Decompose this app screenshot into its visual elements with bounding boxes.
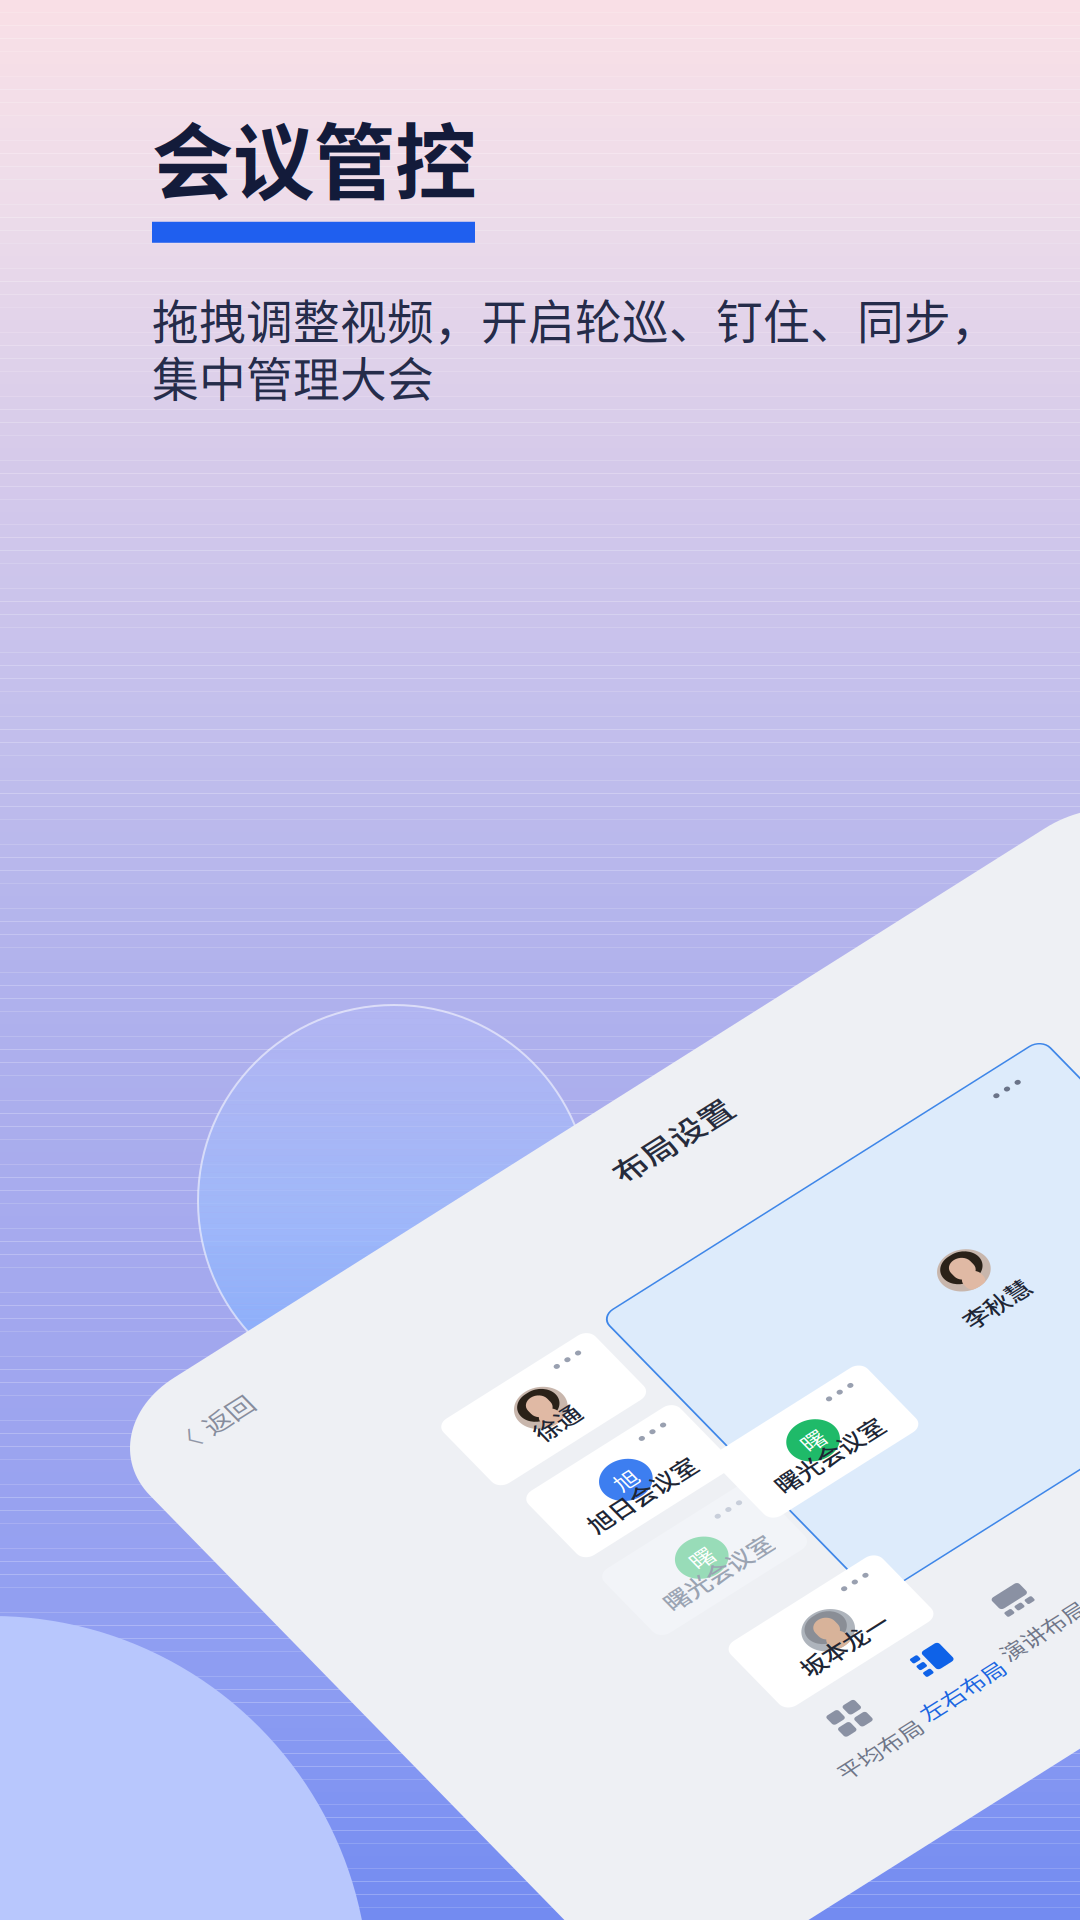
button[interactable]: 演讲布局 [845, 1210, 1015, 1360]
staticText: 坂本龙一 [588, 1112, 752, 1172]
staticText: 演讲布局 [850, 1297, 1010, 1355]
button[interactable]: 〈 [0, 0, 278, 146]
staticText: 会议管控 [152, 98, 476, 216]
staticText: 平均布局 [509, 1323, 669, 1381]
staticText: 集中管理大会 [152, 342, 434, 410]
staticText: 返回 [147, 83, 237, 149]
staticText: 拖拽调整视频，开启轮巡、钉住、同步， [152, 285, 998, 352]
button[interactable]: 平均布局 [504, 1236, 674, 1386]
button[interactable]: 左右布局 [675, 1225, 845, 1375]
